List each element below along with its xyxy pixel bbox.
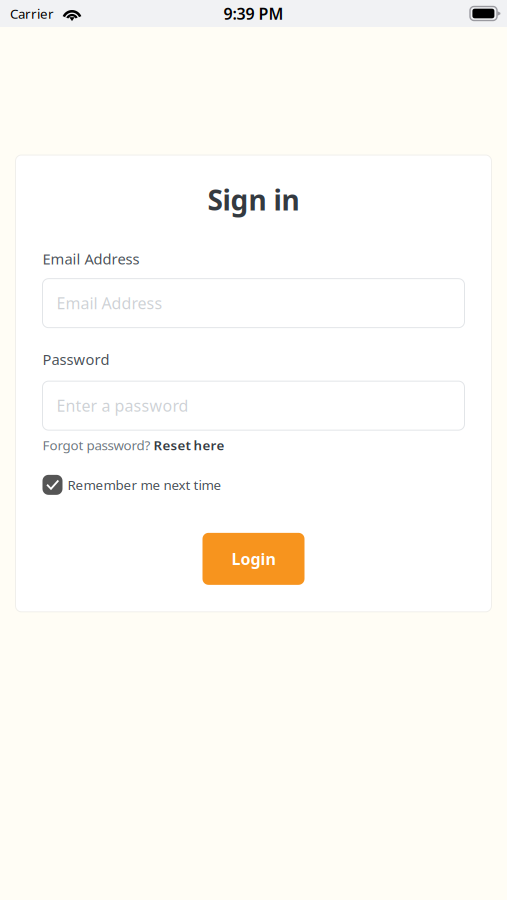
staticText: Remember me next time xyxy=(67,476,221,494)
button[interactable]: Forgot password? xyxy=(42,436,464,454)
staticText: 9:39 PM xyxy=(223,3,283,24)
staticText: Email Address xyxy=(42,249,139,269)
staticText: Reset here xyxy=(153,436,224,454)
staticText: Sign in xyxy=(207,181,299,218)
staticText: Forgot password? xyxy=(42,436,153,454)
button[interactable]: Login xyxy=(202,533,304,585)
button[interactable]: Remember me next time xyxy=(42,475,464,495)
staticText: Email Address xyxy=(56,292,162,314)
staticText: Password xyxy=(42,350,109,369)
staticText: Carrier xyxy=(10,5,54,22)
staticText: Login xyxy=(231,548,275,569)
staticText: Enter a password xyxy=(56,395,188,416)
